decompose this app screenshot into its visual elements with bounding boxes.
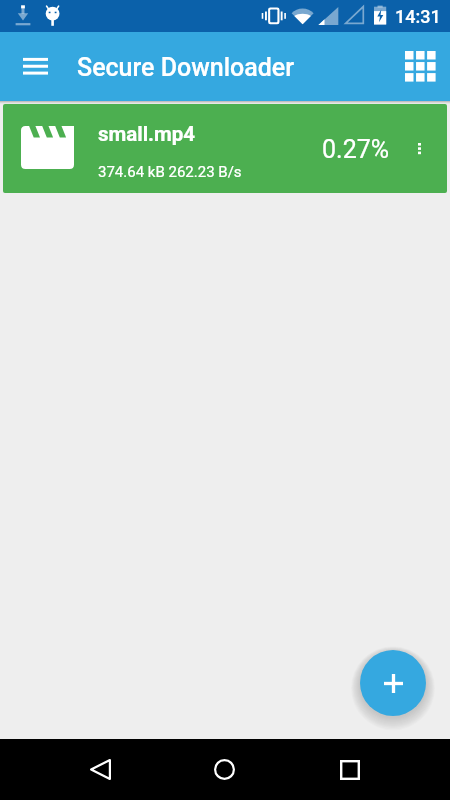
button[interactable]: Recent apps: [314, 739, 386, 800]
button[interactable]: small.mp4: [3, 104, 447, 193]
button[interactable]: Open navigation drawer: [2, 32, 68, 101]
button[interactable]: Switch to grid view: [390, 32, 450, 101]
staticText: Secure Downloader: [77, 53, 295, 82]
button[interactable]: Back: [64, 739, 136, 800]
staticText: 0.27%: [322, 135, 390, 164]
button[interactable]: Home: [188, 739, 260, 800]
button[interactable]: More options: [391, 104, 447, 193]
staticText: small.mp4: [98, 122, 196, 146]
staticText: 14:31: [395, 6, 441, 27]
staticText: 374.64 kB 262.23 B/s: [98, 163, 242, 181]
button[interactable]: Add new download: [360, 650, 426, 716]
